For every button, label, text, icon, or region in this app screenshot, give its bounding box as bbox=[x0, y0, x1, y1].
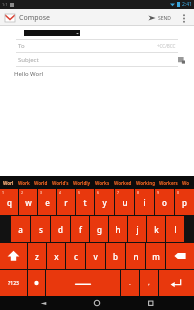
staticText: u bbox=[122, 197, 128, 208]
button[interactable]: j bbox=[128, 216, 146, 242]
button[interactable]: Backspace bbox=[166, 243, 194, 269]
staticText: 5 bbox=[78, 190, 81, 195]
staticText: 2:41 bbox=[182, 1, 192, 8]
button[interactable]: World's bbox=[50, 178, 71, 188]
button[interactable]: To bbox=[0, 40, 194, 52]
button[interactable]: 0 bbox=[175, 189, 194, 215]
staticText: l bbox=[174, 224, 177, 235]
button[interactable]: Work bbox=[16, 178, 32, 188]
button[interactable] bbox=[24, 30, 80, 36]
staticText: Worldly bbox=[73, 180, 91, 186]
button[interactable]: Worl bbox=[1, 178, 16, 188]
staticText: 7 bbox=[117, 190, 120, 195]
button[interactable]: Subject bbox=[0, 53, 194, 66]
button[interactable]: SEND bbox=[145, 12, 174, 24]
button[interactable]: x bbox=[47, 243, 65, 269]
button[interactable]: Hello Worl bbox=[14, 70, 194, 78]
staticText: c bbox=[74, 251, 78, 262]
button[interactable]: g bbox=[90, 216, 108, 242]
button[interactable]: a bbox=[11, 216, 30, 242]
button[interactable]: Attach bbox=[176, 55, 186, 65]
staticText: o bbox=[162, 197, 167, 208]
button[interactable]: c bbox=[66, 243, 85, 269]
button[interactable]: ?123 bbox=[0, 270, 27, 296]
staticText: 8 bbox=[137, 190, 140, 195]
staticText: 4 bbox=[59, 190, 62, 195]
button[interactable]: 7 bbox=[115, 189, 134, 215]
button[interactable]: d bbox=[51, 216, 70, 242]
staticText: 3 bbox=[40, 190, 43, 195]
staticText: , bbox=[148, 280, 150, 287]
button[interactable]: v bbox=[86, 243, 105, 269]
button[interactable]: Recents bbox=[140, 296, 162, 310]
staticText: Workers bbox=[159, 180, 178, 186]
button[interactable]: More options bbox=[178, 12, 190, 24]
staticText: Works bbox=[95, 180, 110, 186]
button[interactable]: k bbox=[147, 216, 165, 242]
staticText: SEND bbox=[158, 15, 171, 22]
button[interactable]: Worldly bbox=[71, 178, 93, 188]
button[interactable]: 1 bbox=[0, 189, 18, 215]
staticText: t bbox=[83, 197, 87, 208]
staticText: Working bbox=[136, 180, 155, 186]
staticText: s bbox=[39, 224, 43, 235]
staticText: r bbox=[64, 197, 68, 208]
staticText: y bbox=[102, 197, 107, 208]
staticText: v bbox=[93, 251, 98, 262]
button[interactable]: l bbox=[166, 216, 184, 242]
staticText: d bbox=[58, 224, 63, 235]
button[interactable]: Space bbox=[46, 270, 120, 296]
staticText: n bbox=[133, 251, 139, 262]
button[interactable]: b bbox=[106, 243, 125, 269]
staticText: b bbox=[113, 251, 118, 262]
button[interactable]: 9 bbox=[155, 189, 174, 215]
button[interactable]: Home bbox=[86, 296, 108, 310]
button[interactable]: 3 bbox=[38, 189, 56, 215]
staticText: Hello Worl bbox=[14, 70, 44, 78]
staticText: ?123 bbox=[8, 280, 19, 287]
button[interactable]: z bbox=[28, 243, 46, 269]
staticText: p bbox=[182, 197, 187, 208]
button[interactable]: Gmail bbox=[4, 12, 15, 23]
button[interactable]: Shift bbox=[0, 243, 27, 269]
button[interactable]: f bbox=[71, 216, 89, 242]
staticText: 1:1 bbox=[2, 2, 8, 7]
button[interactable]: Worked bbox=[112, 178, 134, 188]
staticText: e bbox=[45, 197, 50, 208]
staticText: To bbox=[18, 42, 25, 50]
button[interactable]: s bbox=[31, 216, 50, 242]
button[interactable]: , bbox=[140, 270, 158, 296]
staticText: 2 bbox=[21, 190, 24, 195]
button[interactable]: m bbox=[146, 243, 165, 269]
staticText: i bbox=[143, 197, 146, 208]
button[interactable]: . bbox=[121, 270, 139, 296]
staticText: x bbox=[54, 251, 59, 262]
staticText: h bbox=[115, 224, 121, 235]
staticText: k bbox=[154, 224, 159, 235]
staticText: a bbox=[18, 224, 23, 235]
button[interactable]: 2 bbox=[19, 189, 37, 215]
staticText: w bbox=[25, 197, 32, 208]
button[interactable]: World bbox=[32, 178, 50, 188]
staticText: Worked bbox=[114, 180, 132, 186]
button[interactable]: Works bbox=[93, 178, 112, 188]
staticText: Compose bbox=[19, 13, 51, 23]
button[interactable]: Workers bbox=[157, 178, 180, 188]
button[interactable]: Back bbox=[32, 296, 54, 310]
staticText: f bbox=[79, 224, 82, 235]
button[interactable]: n bbox=[126, 243, 145, 269]
button[interactable]: Worlds bbox=[180, 178, 193, 188]
button[interactable]: Emoji bbox=[28, 270, 45, 296]
button[interactable]: Working bbox=[134, 178, 157, 188]
staticText: Worl bbox=[3, 180, 14, 186]
button[interactable]: 4 bbox=[57, 189, 75, 215]
button[interactable]: 8 bbox=[135, 189, 154, 215]
staticText: . bbox=[129, 280, 131, 287]
button[interactable]: h bbox=[109, 216, 127, 242]
button[interactable]: Enter bbox=[159, 270, 194, 296]
button[interactable]: 5 bbox=[76, 189, 94, 215]
staticText: 0 bbox=[177, 190, 180, 195]
staticText: World bbox=[34, 180, 48, 186]
button[interactable]: 6 bbox=[95, 189, 114, 215]
staticText: j bbox=[136, 224, 139, 235]
